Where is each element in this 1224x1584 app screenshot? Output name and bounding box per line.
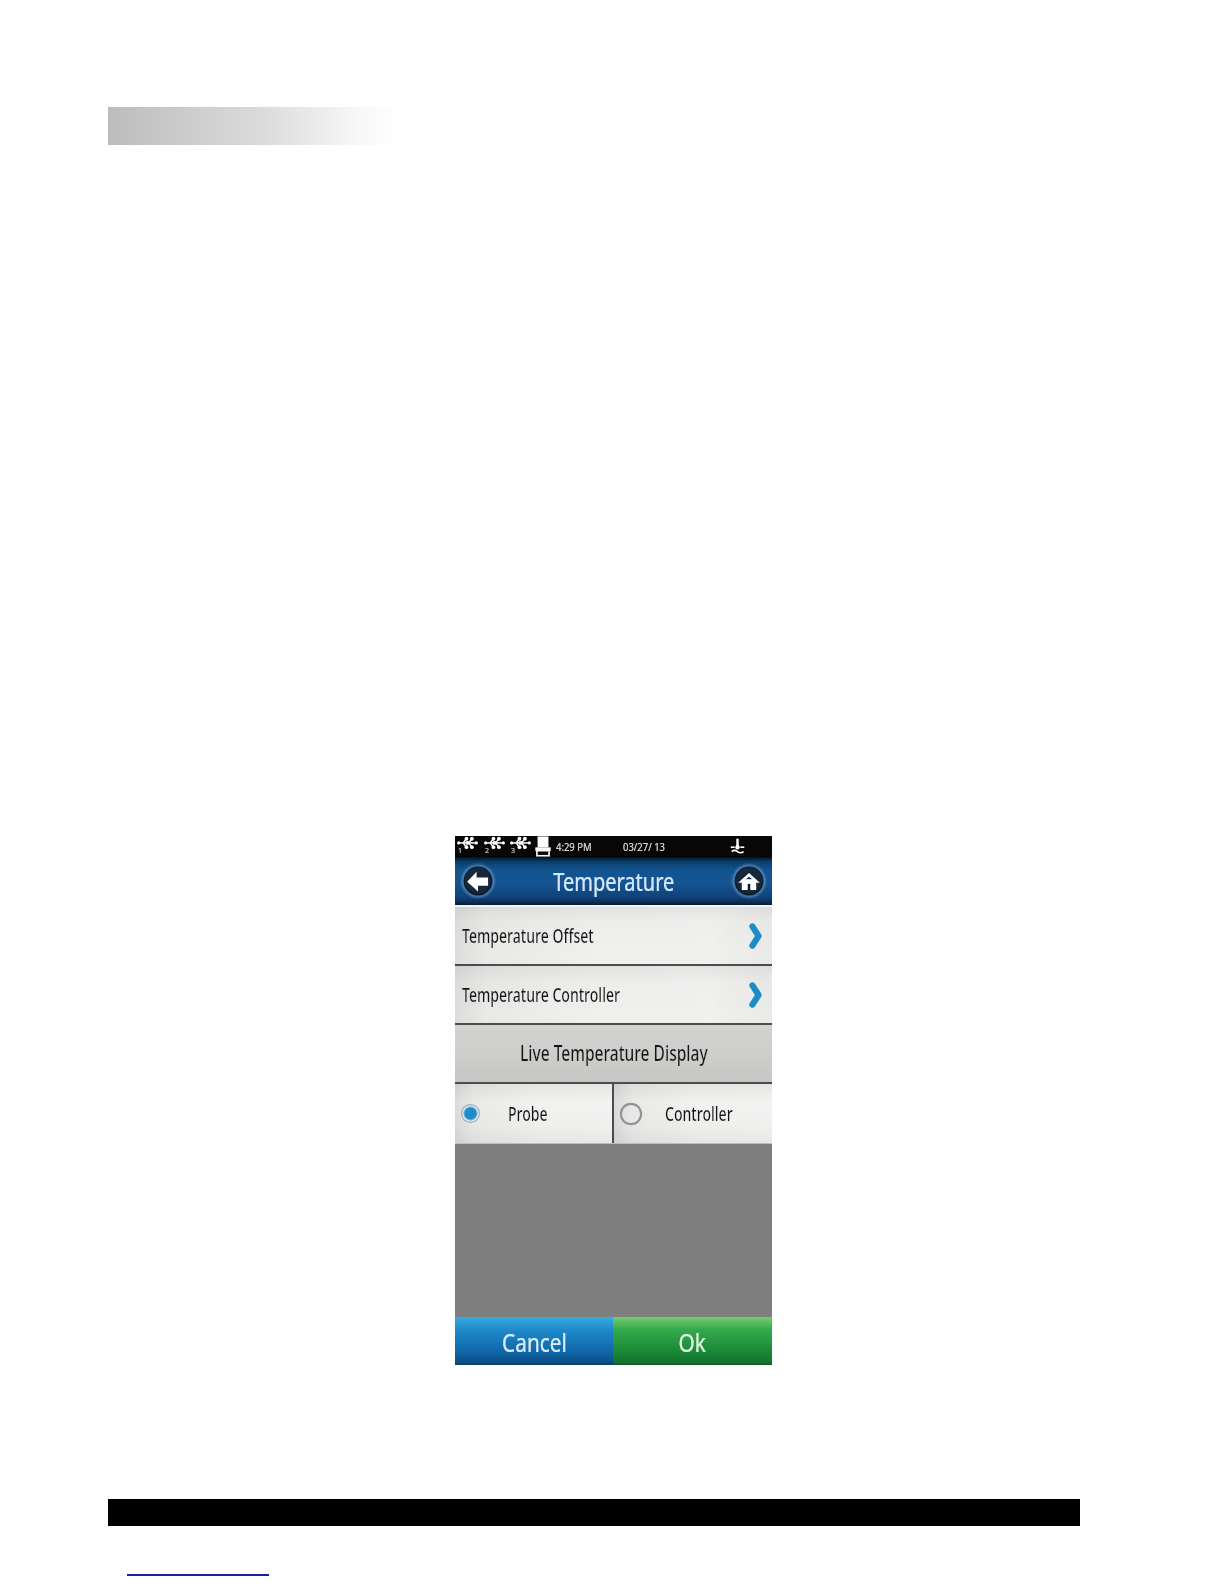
button[interactable]: Home bbox=[731, 863, 767, 899]
button[interactable]: Probe bbox=[455, 1084, 612, 1143]
staticText: Probe bbox=[508, 1101, 548, 1127]
button[interactable]: Temperature Controller bbox=[455, 966, 772, 1023]
staticText: 03/27/ 13 bbox=[623, 839, 665, 854]
staticText: Ok bbox=[678, 1324, 706, 1359]
staticText: Temperature Offset bbox=[462, 923, 594, 949]
staticText: 2 bbox=[485, 846, 490, 856]
staticText: Temperature bbox=[553, 864, 675, 898]
staticText: Cancel bbox=[502, 1324, 567, 1359]
button[interactable]: Back bbox=[460, 863, 496, 899]
staticText: 4:29 PM bbox=[556, 839, 592, 854]
button[interactable]: Temperature Offset bbox=[455, 907, 772, 964]
other: Probe status bbox=[729, 838, 746, 855]
button[interactable]: Ok bbox=[613, 1317, 772, 1365]
staticText: 3 bbox=[511, 846, 516, 856]
button[interactable]: Controller bbox=[614, 1084, 772, 1143]
staticText: 1 bbox=[458, 846, 463, 856]
button[interactable]: Cancel bbox=[455, 1317, 613, 1365]
staticText: Controller bbox=[665, 1101, 733, 1127]
staticText: Live Temperature Display bbox=[520, 1039, 708, 1068]
staticText: Temperature Controller bbox=[462, 982, 620, 1008]
